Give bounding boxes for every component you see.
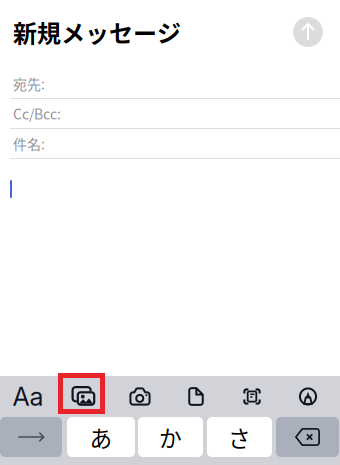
staticText: さ (228, 421, 251, 453)
staticText: あ (89, 421, 112, 453)
button[interactable]: さ (207, 417, 272, 457)
button[interactable]: マークアップ (280, 376, 336, 417)
button[interactable]: あ (67, 417, 135, 457)
staticText: Aa (12, 381, 43, 412)
button[interactable]: 写真 (56, 376, 112, 417)
button[interactable]: 書類 (168, 376, 224, 417)
staticText: か (159, 421, 182, 453)
button[interactable]: 送信 (293, 17, 323, 47)
staticText: Cc/Bcc: (13, 103, 61, 124)
staticText: 宛先: (13, 73, 45, 94)
button[interactable]: 削除 (276, 417, 339, 457)
button[interactable]: 書式 (0, 376, 56, 417)
staticText: 新規メッセージ (13, 15, 181, 49)
button[interactable]: 次の入力 (0, 417, 62, 457)
button[interactable]: カメラ (112, 376, 168, 417)
button[interactable]: 書類をスキャン (224, 376, 280, 417)
button[interactable]: か (138, 417, 203, 457)
staticText: 件名: (13, 133, 45, 154)
